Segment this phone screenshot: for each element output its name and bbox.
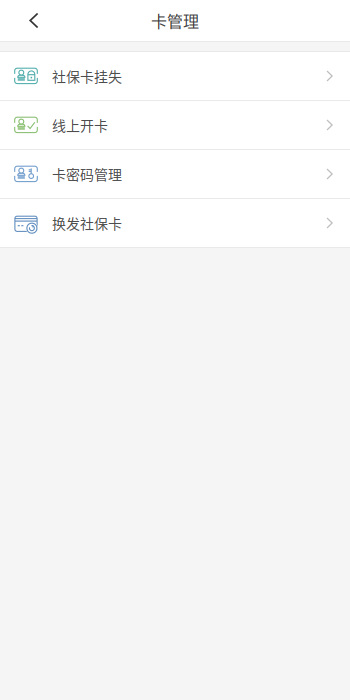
button[interactable]: Back xyxy=(0,0,68,41)
staticText: 线上开卡 xyxy=(52,115,108,135)
button[interactable]: 卡密码管理 xyxy=(0,150,350,198)
staticText: 卡密码管理 xyxy=(52,164,122,184)
staticText: 社保卡挂失 xyxy=(52,66,122,86)
button[interactable]: 换发社保卡 xyxy=(0,199,350,247)
staticText: 卡管理 xyxy=(151,9,199,32)
staticText: 换发社保卡 xyxy=(52,213,122,233)
button[interactable]: 线上开卡 xyxy=(0,101,350,149)
button[interactable]: 社保卡挂失 xyxy=(0,52,350,100)
